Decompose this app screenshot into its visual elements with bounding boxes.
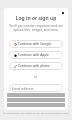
staticText: You'll get smarter responses and can upl… <box>7 24 65 32</box>
staticText: Email address <box>12 86 34 90</box>
staticText: Continue with Google <box>18 42 52 46</box>
button[interactable]: Continue with Apple <box>9 51 63 59</box>
staticText: By continuing, you agree to our Terms an… <box>0 111 72 114</box>
button[interactable]: Continue with Google <box>9 40 63 48</box>
staticText: Continue with Apple <box>18 53 49 57</box>
staticText: or <box>34 75 38 79</box>
staticText: Continue with phone <box>18 64 50 68</box>
button[interactable]: Close <box>60 10 66 16</box>
staticText: Log in or sign up <box>4 15 68 22</box>
button[interactable]: Email address <box>9 84 63 92</box>
button[interactable]: Continue with phone <box>9 62 63 70</box>
